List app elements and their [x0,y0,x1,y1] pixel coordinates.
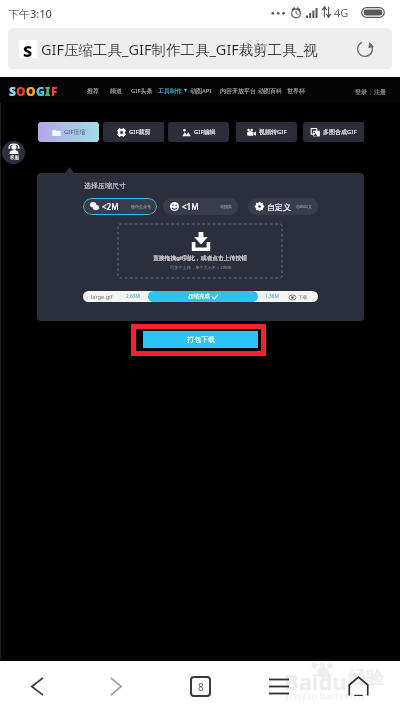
staticText: 工具制作 [158,87,182,95]
staticText: GIF编辑 [194,128,216,136]
button[interactable]: Refresh [351,35,379,63]
staticText: O [26,83,36,98]
button[interactable]: 频道 [110,84,122,97]
staticText: GIF裁剪 [129,128,151,136]
staticText: O [16,83,26,98]
staticText: I [45,83,51,98]
staticText: 可多个上传，单个大小不＞20MB [170,265,232,271]
button[interactable]: 多图合成GIF [303,122,364,142]
staticText: 选择压缩尺寸 [84,181,126,190]
staticText: large.gif [91,293,113,300]
button[interactable]: 动图百科 [258,84,282,97]
button[interactable]: Tabs [180,661,220,711]
button[interactable]: GIF裁剪 [103,122,164,142]
staticText: 世界杯 [287,87,305,95]
staticText: 动图API [190,87,212,95]
staticText: S [23,40,33,58]
staticText: 1.36M [265,293,279,300]
staticText: Baidu [284,666,347,696]
staticText: jingyan.baidu.com [286,689,364,701]
button[interactable]: 打包下载 [143,331,258,348]
staticText: 8 [198,680,204,694]
staticText: 2.63M [126,293,140,300]
staticText: 下载 [298,294,308,300]
staticText: 登录 [355,88,367,96]
staticText: F [51,83,58,98]
staticText: 推荐 [87,87,99,95]
staticText: 经验 [348,667,384,690]
staticText: 下午3:10 [8,6,52,21]
button[interactable]: 压缩完成 [83,291,318,302]
staticText: 客服 [10,155,19,161]
staticText: 压缩完成 [188,293,210,300]
button[interactable]: GIF头条 [131,84,153,97]
staticText: | [367,88,374,96]
button[interactable]: 客服 Customer service [2,141,25,164]
button[interactable]: Menu [259,661,299,711]
staticText: 打包下载 [187,335,215,344]
button[interactable]: SOOGIF home [9,83,58,98]
staticText: GIF压缩 [64,128,86,136]
staticText: 多图合成GIF [323,128,357,136]
staticText: 微信公众号 [131,204,151,209]
staticText: <1M [182,201,199,212]
staticText: S [9,83,16,98]
button[interactable]: <2M [83,198,157,215]
staticText: 自由定义 [296,204,312,209]
staticText: 视频转GIF [259,128,287,136]
button[interactable]: 直接拖拽gif到此，或者点击上传按钮 [118,224,282,278]
button[interactable]: Back [17,661,57,711]
button[interactable]: 自定义 [248,198,318,215]
staticText: 动图百科 [258,87,282,95]
staticText: 内容开放平台 [220,87,256,95]
button[interactable]: Forward [96,661,136,711]
button[interactable]: GIF压缩 [38,122,99,142]
button[interactable]: 内容开放平台 [220,84,256,97]
staticText: 直接拖拽gif到此，或者点击上传按钮 [153,254,248,262]
button[interactable]: S [8,28,392,69]
staticText: <2M [102,201,119,212]
button[interactable]: <1M [163,198,238,215]
button[interactable]: 登录 [355,88,386,96]
staticText: 表情类 [220,204,232,209]
button[interactable]: 世界杯 [287,84,305,97]
button[interactable]: Home [338,661,378,711]
staticText: GIF头条 [131,87,153,95]
staticText: 注册 [374,88,386,96]
button[interactable]: 工具制作 [158,84,187,97]
staticText: 自定义 [267,202,291,212]
button[interactable]: 推荐 [87,84,99,97]
staticText: 4G [334,5,349,20]
staticText: G [36,83,45,98]
button[interactable]: 动图API [190,84,212,97]
button[interactable]: 视频转GIF [236,122,297,142]
staticText: GIF压缩工具_GIF制作工具_GIF裁剪工具_视 [41,39,318,59]
staticText: 频道 [110,87,122,95]
button[interactable]: GIF编辑 [168,122,229,142]
